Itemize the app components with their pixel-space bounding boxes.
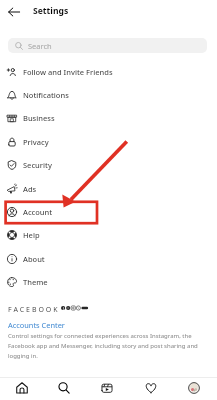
staticText: About <box>23 254 45 264</box>
staticText: Privacy <box>23 137 49 147</box>
button[interactable]: Account <box>0 200 217 223</box>
button[interactable]: Privacy <box>0 130 217 153</box>
button[interactable]: Ads <box>0 177 217 200</box>
staticText: Notifications <box>23 90 69 100</box>
button[interactable]: Theme <box>0 270 217 293</box>
button[interactable]: Search <box>53 377 75 399</box>
button[interactable]: Back <box>3 1 24 22</box>
staticText: Accounts Center <box>8 320 65 330</box>
button[interactable]: About <box>0 247 217 270</box>
staticText: Control settings for connected experienc… <box>8 332 204 359</box>
staticText: FACEBOOK <box>8 305 60 315</box>
staticText: Help <box>23 230 40 240</box>
button[interactable]: Profile <box>183 377 205 399</box>
button[interactable]: Search <box>8 38 207 53</box>
button[interactable]: Security <box>0 153 217 176</box>
staticText: Theme <box>23 277 48 287</box>
button[interactable]: Home <box>11 377 33 399</box>
staticText: Ads <box>23 184 37 194</box>
staticText: Business <box>23 113 55 123</box>
staticText: Account <box>23 207 53 217</box>
staticText: Settings <box>33 5 69 17</box>
button[interactable]: Notifications <box>0 83 217 106</box>
staticText: Follow and Invite Friends <box>23 67 113 77</box>
button[interactable]: Help <box>0 223 217 246</box>
staticText: Search <box>28 41 52 51</box>
button[interactable]: Accounts Center <box>8 320 65 330</box>
button[interactable]: Follow and Invite Friends <box>0 60 217 83</box>
button[interactable]: Reels <box>96 377 118 399</box>
button[interactable]: Business <box>0 106 217 129</box>
staticText: Security <box>23 160 52 170</box>
button[interactable]: Likes <box>140 377 162 399</box>
